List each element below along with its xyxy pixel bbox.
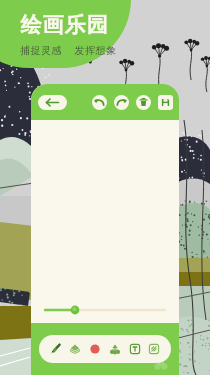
button[interactable]: Effects bbox=[145, 340, 163, 358]
staticText: 捕捉灵感 发挥想象 bbox=[20, 43, 117, 57]
button[interactable]: Eraser bbox=[66, 340, 84, 358]
button[interactable]: Redo bbox=[114, 95, 129, 110]
button[interactable]: Brush bbox=[47, 340, 65, 358]
button[interactable]: Delete bbox=[136, 95, 151, 110]
staticText: 绘画乐园 bbox=[20, 12, 108, 38]
button[interactable]: Brush size bbox=[45, 297, 165, 323]
button[interactable]: Undo bbox=[92, 95, 107, 110]
button[interactable]: Back bbox=[38, 95, 67, 110]
button[interactable]: Color bbox=[86, 340, 104, 358]
button[interactable]: Text bbox=[126, 340, 144, 358]
button[interactable]: Save bbox=[158, 95, 173, 110]
button[interactable]: Shapes bbox=[106, 340, 124, 358]
